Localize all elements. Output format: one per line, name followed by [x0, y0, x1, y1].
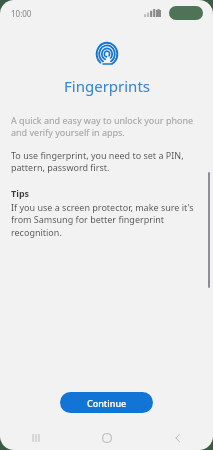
button[interactable]: Back — [142, 426, 213, 450]
other: Fingerprint — [96, 42, 118, 66]
staticText: If you use a screen protector, make sure… — [11, 201, 202, 239]
staticText: Fingerprints — [64, 76, 150, 96]
staticText: A quick and easy way to unlock your phon… — [11, 114, 202, 139]
staticText: To use fingerprint, you need to set a PI… — [11, 149, 202, 174]
staticText: Continue — [87, 397, 127, 409]
staticText: Tips — [11, 187, 30, 199]
button[interactable]: Recent apps — [0, 426, 71, 450]
button[interactable]: Continue — [60, 392, 153, 413]
button[interactable]: Home — [71, 426, 142, 450]
staticText: 10:00 — [11, 8, 32, 19]
